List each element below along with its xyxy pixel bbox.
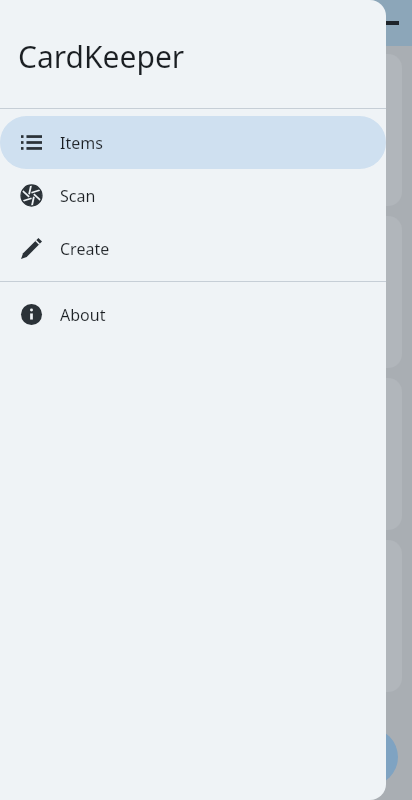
button[interactable]: About <box>0 288 386 341</box>
button[interactable]: Create <box>0 222 386 275</box>
button[interactable] <box>10 216 402 368</box>
staticText: Items <box>60 132 103 154</box>
staticText: Create <box>60 238 110 260</box>
staticText: CardKeeper <box>18 36 185 77</box>
staticText: About <box>60 304 106 326</box>
button[interactable] <box>10 54 402 206</box>
button[interactable] <box>10 378 402 530</box>
button[interactable] <box>10 540 402 692</box>
staticText: Scan <box>60 185 96 207</box>
button[interactable]: Add card <box>340 728 398 786</box>
button[interactable]: Scan <box>0 169 386 222</box>
button[interactable]: Items <box>0 116 386 169</box>
